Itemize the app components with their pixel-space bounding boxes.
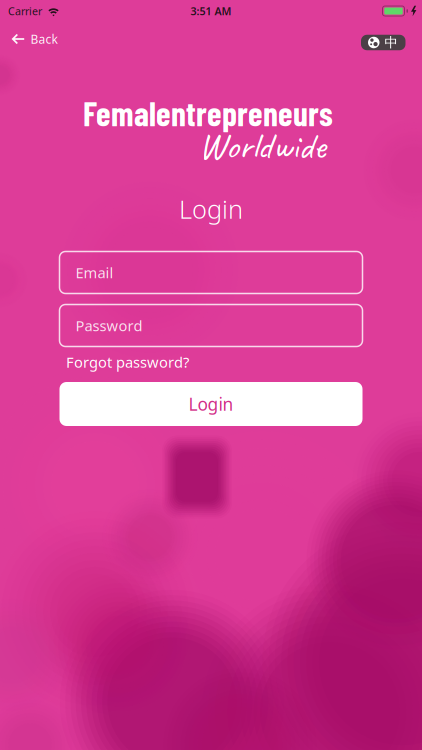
button[interactable]: Change language xyxy=(361,35,405,50)
staticText: Login xyxy=(188,392,233,415)
button[interactable]: Email xyxy=(59,251,362,293)
staticText: Email xyxy=(75,263,113,282)
staticText: Back xyxy=(30,31,57,47)
staticText: Carrier xyxy=(8,4,42,18)
button[interactable]: Forgot password? xyxy=(66,352,189,372)
button[interactable]: Password xyxy=(59,304,362,346)
staticText: 3:51 AM xyxy=(190,4,231,18)
button[interactable]: Login xyxy=(59,382,362,426)
staticText: Password xyxy=(75,316,142,335)
staticText: Worldwide xyxy=(198,122,325,169)
button[interactable]: Back xyxy=(0,31,57,47)
staticText: Login xyxy=(179,192,243,226)
staticText: 中 xyxy=(384,34,397,51)
staticText: Forgot password? xyxy=(66,352,189,372)
staticText: Femalentrepreneurs xyxy=(83,93,333,133)
